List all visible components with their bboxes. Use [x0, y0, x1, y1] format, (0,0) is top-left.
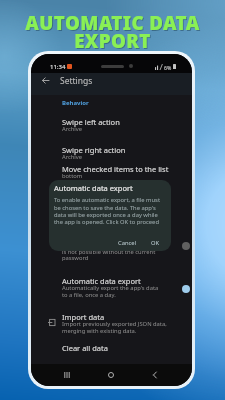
button[interactable]: Encryption [31, 231, 192, 252]
staticText: Automatic data export [54, 183, 133, 193]
staticText: Swipe right action [62, 145, 126, 155]
button[interactable]: Swipe right action [31, 143, 192, 159]
staticText: EXPORT [75, 29, 152, 54]
button[interactable]: Move checked items to the list [31, 162, 192, 178]
staticText: Clear all data [62, 343, 108, 353]
button[interactable]: Automatic data export [31, 274, 192, 295]
staticText: 11:34 [50, 63, 66, 71]
button[interactable]: Home [104, 368, 118, 382]
button[interactable]: OK [149, 238, 162, 248]
button[interactable]: Back [38, 73, 52, 87]
staticText: Import data [62, 312, 105, 322]
button[interactable]: Import data [31, 310, 192, 331]
staticText: Behavior [62, 99, 89, 107]
button[interactable]: Back [148, 368, 162, 382]
button[interactable]: Swipe left action [31, 115, 192, 131]
staticText: Swipe left action [62, 117, 120, 127]
staticText: EXPORT [74, 28, 151, 53]
staticText: To enable automatic export, a file must … [54, 196, 166, 225]
staticText: bottom [62, 172, 83, 180]
staticText: Cancel [118, 239, 137, 247]
staticText: Move checked items to the list [62, 164, 169, 174]
staticText: Archive [62, 125, 83, 133]
staticText: 6% [164, 64, 172, 71]
button[interactable]: Recent apps [60, 368, 74, 382]
button[interactable]: Cancel [116, 238, 139, 248]
staticText: Automatically export the app's data to a… [62, 284, 159, 299]
staticText: AUTOMATIC DATA [25, 10, 200, 35]
staticText: Archive [62, 153, 83, 161]
staticText: Settings [60, 75, 93, 87]
staticText: AUTOMATIC DATA [26, 11, 201, 36]
staticText: Import previously exported JSON data, me… [62, 320, 167, 335]
staticText: OK [151, 239, 160, 247]
staticText: Encrypting the data is not possible with… [62, 241, 156, 262]
staticText: Automatic data export [62, 276, 141, 286]
